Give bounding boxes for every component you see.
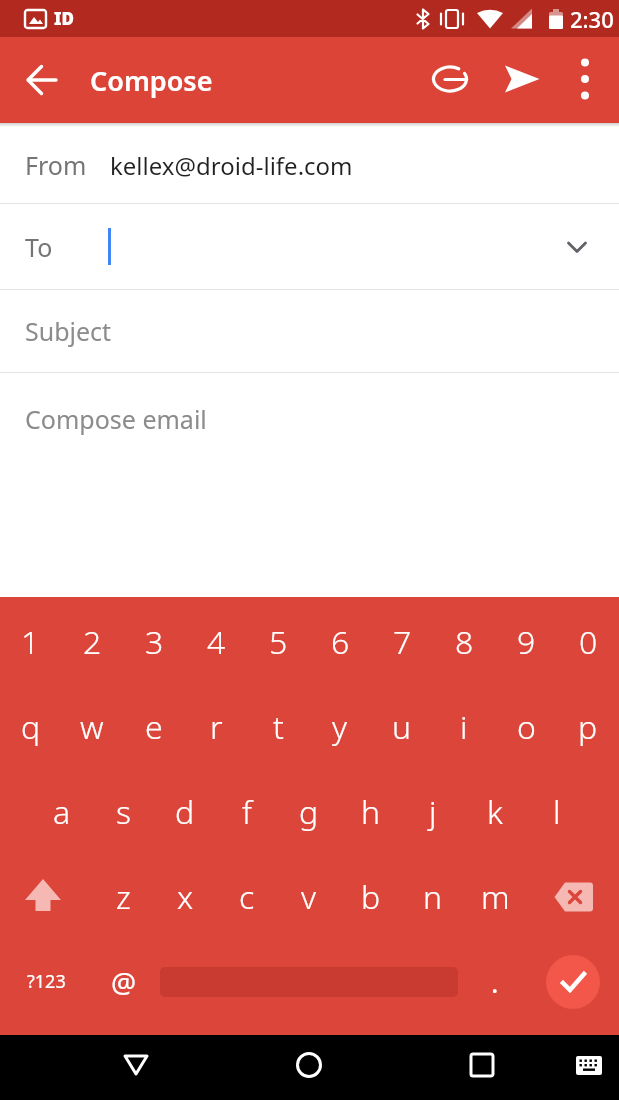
- button[interactable]: [561, 55, 609, 103]
- button[interactable]: [18, 56, 66, 104]
- button[interactable]: w: [61, 684, 123, 769]
- staticText: Compose: [90, 62, 213, 99]
- button[interactable]: [0, 854, 93, 939]
- staticText: .: [491, 963, 499, 1001]
- staticText: Compose email: [25, 402, 207, 436]
- staticText: kellex@droid-life.com: [110, 149, 353, 182]
- staticText: w: [80, 705, 104, 749]
- button[interactable]: u: [371, 684, 433, 769]
- staticText: y: [332, 705, 348, 749]
- staticText: 0: [579, 620, 598, 664]
- button[interactable]: @: [93, 939, 155, 1024]
- button[interactable]: [498, 55, 546, 103]
- button[interactable]: p: [557, 684, 619, 769]
- button[interactable]: [526, 939, 619, 1024]
- button[interactable]: [546, 955, 600, 1009]
- button[interactable]: Compose email: [0, 373, 619, 465]
- staticText: i: [460, 705, 468, 749]
- button[interactable]: a: [31, 769, 92, 854]
- button[interactable]: [112, 1041, 160, 1089]
- staticText: From: [25, 148, 87, 182]
- staticText: e: [145, 705, 163, 749]
- button[interactable]: 1: [0, 599, 61, 684]
- button[interactable]: r: [185, 684, 247, 769]
- button[interactable]: c: [216, 854, 278, 939]
- staticText: Subject: [25, 314, 112, 348]
- button[interactable]: t: [247, 684, 309, 769]
- staticText: 1: [21, 620, 40, 664]
- staticText: c: [239, 875, 255, 919]
- button[interactable]: e: [123, 684, 185, 769]
- button[interactable]: 6: [309, 599, 371, 684]
- button[interactable]: s: [92, 769, 154, 854]
- button[interactable]: 2: [61, 599, 123, 684]
- button[interactable]: i: [433, 684, 495, 769]
- staticText: p: [578, 705, 598, 749]
- staticText: d: [175, 790, 195, 834]
- button[interactable]: d: [154, 769, 216, 854]
- button[interactable]: 3: [123, 599, 185, 684]
- staticText: 2: [83, 620, 102, 664]
- staticText: n: [423, 875, 443, 919]
- button[interactable]: q: [0, 684, 61, 769]
- button[interactable]: n: [402, 854, 464, 939]
- staticText: 4: [207, 620, 226, 664]
- button[interactable]: Subject: [0, 290, 619, 372]
- button[interactable]: o: [495, 684, 557, 769]
- button[interactable]: .: [463, 939, 526, 1024]
- button[interactable]: [160, 939, 458, 1024]
- button[interactable]: 5: [247, 599, 309, 684]
- button[interactable]: To: [0, 204, 619, 289]
- button[interactable]: h: [340, 769, 402, 854]
- staticText: u: [392, 705, 412, 749]
- button[interactable]: 8: [433, 599, 495, 684]
- button[interactable]: x: [154, 854, 216, 939]
- button[interactable]: j: [402, 769, 464, 854]
- staticText: 3: [145, 620, 164, 664]
- button[interactable]: g: [278, 769, 340, 854]
- button[interactable]: l: [526, 769, 588, 854]
- button[interactable]: [565, 1041, 613, 1089]
- staticText: o: [517, 705, 536, 749]
- button[interactable]: y: [309, 684, 371, 769]
- staticText: k: [487, 790, 503, 834]
- button[interactable]: [285, 1041, 333, 1089]
- staticText: 9: [517, 620, 536, 664]
- staticText: l: [553, 790, 561, 834]
- staticText: @: [111, 963, 137, 1001]
- staticText: 5: [269, 620, 288, 664]
- button[interactable]: 7: [371, 599, 433, 684]
- button[interactable]: k: [464, 769, 526, 854]
- button[interactable]: v: [278, 854, 340, 939]
- button[interactable]: 4: [185, 599, 247, 684]
- button[interactable]: [557, 227, 597, 267]
- staticText: h: [361, 790, 381, 834]
- button[interactable]: [526, 854, 619, 939]
- button[interactable]: ?123: [0, 939, 93, 1024]
- button[interactable]: f: [216, 769, 278, 854]
- staticText: m: [481, 875, 510, 919]
- staticText: s: [116, 790, 131, 834]
- staticText: To: [25, 230, 53, 264]
- button[interactable]: z: [93, 854, 154, 939]
- staticText: z: [116, 875, 131, 919]
- staticText: 2:30: [570, 4, 614, 34]
- staticText: b: [361, 875, 381, 919]
- staticText: t: [273, 705, 284, 749]
- button[interactable]: 9: [495, 599, 557, 684]
- staticText: 8: [455, 620, 474, 664]
- button[interactable]: [458, 1041, 506, 1089]
- staticText: q: [21, 705, 41, 749]
- staticText: v: [301, 875, 317, 919]
- staticText: a: [53, 790, 71, 834]
- staticText: 6: [331, 620, 350, 664]
- button[interactable]: m: [464, 854, 526, 939]
- button[interactable]: b: [340, 854, 402, 939]
- staticText: 7: [393, 620, 412, 664]
- button[interactable]: [426, 55, 474, 103]
- staticText: f: [242, 790, 252, 834]
- button[interactable]: 0: [557, 599, 619, 684]
- staticText: ?123: [27, 969, 66, 994]
- staticText: ID: [54, 7, 74, 30]
- button[interactable]: From: [0, 127, 619, 203]
